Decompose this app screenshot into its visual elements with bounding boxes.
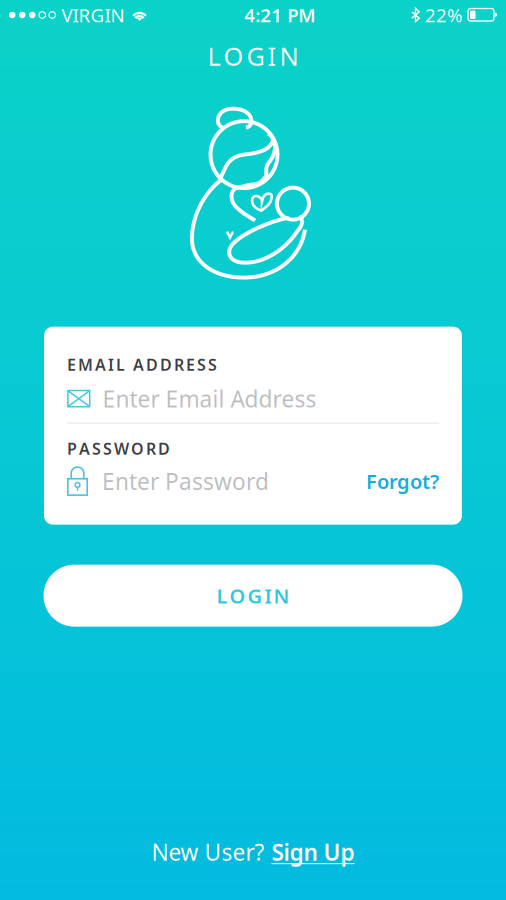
- staticText: VIRGIN: [61, 3, 124, 27]
- staticText: Enter Email Address: [103, 384, 317, 414]
- staticText: L O G I N: [207, 39, 298, 73]
- staticText: Enter Password: [102, 466, 269, 496]
- staticText: Sign Up: [271, 837, 354, 867]
- staticText: New User?: [151, 837, 264, 867]
- button[interactable]: New User?: [151, 837, 354, 867]
- staticText: L O G I N: [216, 582, 289, 609]
- button[interactable]: Forgot?: [366, 468, 439, 494]
- staticText: 22%: [425, 3, 463, 27]
- staticText: P A S S W O R D: [67, 438, 170, 459]
- button[interactable]: L O G I N: [43, 565, 462, 627]
- staticText: Forgot?: [366, 468, 439, 494]
- staticText: E M A I L A D D R E S S: [67, 354, 217, 375]
- staticText: 4:21 PM: [244, 3, 315, 27]
